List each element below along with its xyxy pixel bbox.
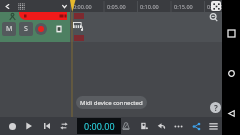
button[interactable]: Help — [210, 102, 221, 113]
staticText: S — [24, 24, 28, 34]
staticText: Midi device connected — [80, 99, 143, 107]
button[interactable]: Undo — [153, 117, 169, 135]
button[interactable]: More options — [170, 117, 186, 135]
button[interactable]: Home — [223, 65, 239, 81]
staticText: 0:10.00 — [140, 3, 159, 10]
button[interactable]: Record arm — [35, 23, 47, 35]
staticText: 0:00.00 — [84, 120, 115, 132]
button[interactable]: Back — [223, 105, 239, 121]
staticText: 0:20.00 — [207, 3, 226, 10]
button[interactable]: Recents — [223, 25, 239, 41]
button[interactable]: Share — [188, 117, 204, 135]
button[interactable]: Track level — [19, 12, 67, 20]
button[interactable]: Instrument — [136, 117, 152, 135]
button[interactable]: Zoom out — [208, 12, 219, 23]
staticText: M — [6, 24, 13, 34]
button[interactable]: 0:00.00 — [77, 118, 121, 134]
button[interactable]: Metronome — [118, 117, 134, 135]
button[interactable]: Loop — [56, 117, 72, 135]
button[interactable]: Record — [4, 117, 20, 135]
staticText: 0:00.00 — [73, 3, 92, 10]
button[interactable]: Back — [0, 0, 14, 12]
staticText: ? — [214, 102, 218, 113]
button[interactable]: Expand tracks — [57, 0, 71, 12]
staticText: 0:05.00 — [107, 3, 126, 10]
button[interactable]: Instrument — [52, 22, 66, 36]
staticText: 0:15.00 — [174, 3, 193, 10]
button[interactable]: M — [2, 22, 16, 36]
button[interactable]: Tracks — [14, 0, 28, 12]
button[interactable]: Play — [21, 117, 37, 135]
button[interactable]: Piano roll editor — [211, 1, 221, 11]
button[interactable]: Skip to start — [39, 117, 55, 135]
button[interactable]: Menu — [205, 117, 221, 135]
button[interactable]: S — [19, 22, 33, 36]
